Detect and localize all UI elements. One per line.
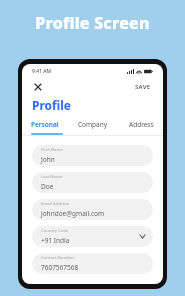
button[interactable]: Close (32, 81, 44, 93)
staticText: Last Name (41, 174, 63, 180)
staticText: Profile (32, 97, 72, 113)
button[interactable]: Address (113, 120, 154, 135)
staticText: SAVE (135, 83, 151, 91)
staticText: First Name (41, 147, 63, 153)
staticText: 9:41 AM (32, 68, 52, 75)
button[interactable]: Last Name (32, 172, 153, 193)
staticText: Country Code (41, 228, 69, 234)
staticText: Contact Number (41, 255, 75, 261)
staticText: johndoe@gmail.com (41, 209, 105, 218)
staticText: 7607567568 (41, 263, 79, 272)
button[interactable]: Email Address (32, 199, 153, 220)
button[interactable]: Contact Number (32, 253, 153, 274)
button[interactable]: SAVE (133, 81, 153, 93)
staticText: Address (129, 120, 154, 129)
staticText: +91 India (41, 236, 70, 245)
staticText: Personal (31, 120, 59, 129)
button[interactable]: Country Code (32, 226, 153, 247)
staticText: Doe (41, 182, 54, 191)
button[interactable]: Personal (31, 120, 72, 135)
button[interactable]: Company (72, 120, 113, 135)
staticText: Profile Screen (0, 12, 185, 34)
staticText: Company (78, 120, 108, 129)
staticText: Email Address (41, 201, 70, 207)
button[interactable]: First Name (32, 145, 153, 166)
staticText: John (41, 155, 55, 164)
